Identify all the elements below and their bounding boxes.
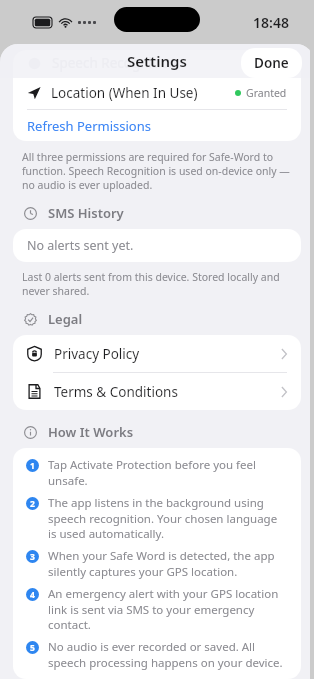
staticText: Location (When In Use)	[51, 84, 198, 102]
staticText: No alerts sent yet.	[27, 237, 134, 254]
staticText: No audio is ever recorded or saved. All …	[48, 639, 288, 670]
staticText: Granted	[246, 86, 287, 100]
staticText: Terms & Conditions	[54, 383, 178, 401]
button[interactable]: Location (When In Use)	[13, 76, 301, 109]
staticText: How It Works	[48, 423, 134, 441]
staticText: 1	[30, 460, 35, 472]
staticText: Done	[254, 54, 289, 72]
staticText: When your Safe Word is detected, the app…	[48, 548, 288, 579]
staticText: All three permissions are required for S…	[22, 150, 292, 192]
staticText: Last 0 alerts sent from this device. Sto…	[22, 270, 292, 298]
staticText: Tap Activate Protection before you feel …	[48, 457, 288, 488]
button[interactable]: Done	[241, 48, 302, 78]
button[interactable]: Privacy Policy	[13, 335, 301, 372]
button[interactable]: Terms & Conditions	[13, 373, 301, 410]
button[interactable]: Refresh Permissions	[13, 110, 301, 141]
staticText: Settings	[127, 51, 187, 71]
button[interactable]: Speech Recognition	[13, 50, 301, 76]
staticText: 4	[30, 589, 35, 601]
staticText: Refresh Permissions	[27, 117, 151, 135]
staticText: 3	[30, 551, 35, 563]
staticText: Legal	[48, 310, 83, 328]
staticText: SMS History	[48, 204, 124, 222]
staticText: An emergency alert with your GPS locatio…	[48, 586, 288, 632]
staticText: 5	[30, 642, 35, 654]
staticText: Speech Recognition	[52, 54, 177, 72]
staticText: The app listens in the background using …	[48, 495, 288, 541]
staticText: 2	[30, 498, 35, 510]
staticText: 18:48	[253, 13, 289, 32]
staticText: Privacy Policy	[54, 345, 140, 363]
